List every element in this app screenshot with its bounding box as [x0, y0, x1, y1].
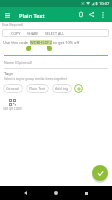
staticText: Select a tag to group similar items toge…	[4, 77, 68, 81]
button[interactable]: Plain Text	[26, 84, 49, 93]
button[interactable]: Add tag	[52, 84, 72, 93]
button[interactable]: Add tag	[74, 84, 83, 93]
staticText: Data (Required)	[2, 23, 24, 27]
staticText: SEE QR CODE	[3, 107, 22, 111]
button[interactable]: General	[3, 84, 23, 93]
staticText: Plain Text	[29, 86, 46, 91]
staticText: Use this code	[3, 40, 30, 45]
button[interactable]: COPY	[10, 31, 22, 36]
button[interactable]: SELECT ALL	[44, 31, 66, 36]
button[interactable]: Save	[92, 165, 108, 181]
staticText: to get 10% off	[52, 40, 80, 45]
staticText: 10:07	[99, 1, 110, 6]
button[interactable]: SEE QR CODE	[3, 99, 22, 111]
button[interactable]: Copy	[75, 9, 86, 20]
button[interactable]: Navigation menu	[0, 8, 14, 22]
staticText: General	[6, 86, 20, 91]
staticText: Tags	[4, 71, 13, 77]
button[interactable]: SHARE	[26, 31, 40, 36]
staticText: COPY	[11, 31, 21, 36]
staticText: SHARE	[27, 31, 39, 36]
button[interactable]: Back	[18, 186, 32, 200]
staticText: Name (Optional)	[4, 60, 32, 65]
button[interactable]: More options	[97, 9, 108, 20]
staticText: SELECT ALL	[45, 31, 65, 36]
button[interactable]: Share	[86, 9, 97, 20]
staticText: WDBHSDF2	[30, 40, 52, 45]
button[interactable]: Home	[49, 186, 63, 200]
staticText: Plain Text	[19, 12, 45, 20]
button[interactable]: Recent apps	[79, 186, 93, 200]
staticText: Add tag	[55, 86, 69, 91]
